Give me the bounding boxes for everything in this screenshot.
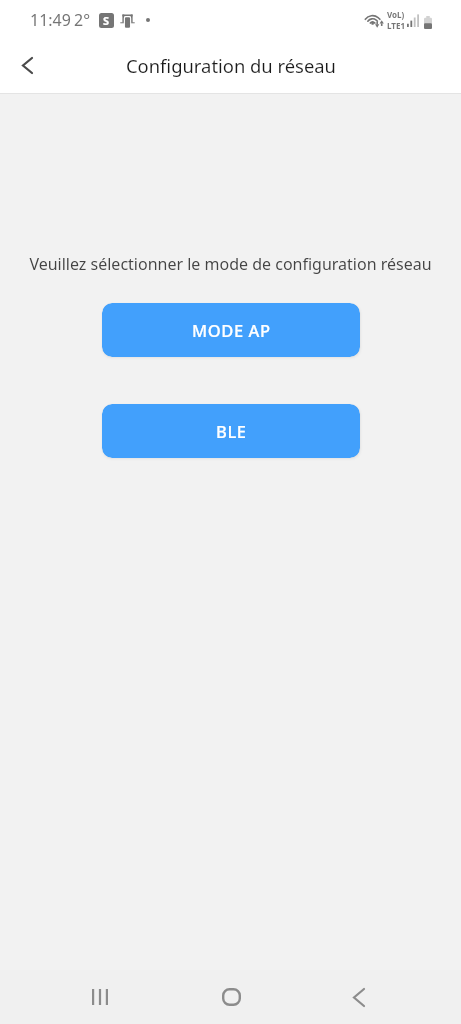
button[interactable]: Home [207, 973, 255, 1021]
button[interactable]: MODE AP [102, 303, 360, 357]
staticText: MODE AP [192, 319, 271, 341]
button[interactable]: BLE [102, 404, 360, 458]
staticText: BLE [216, 420, 247, 442]
staticText: Veuillez sélectionner le mode de configu… [29, 253, 432, 275]
staticText: 11:49 [30, 9, 71, 31]
staticText: 2° [74, 9, 91, 31]
staticText: VoL) [387, 9, 405, 20]
button[interactable]: Back [335, 973, 383, 1021]
staticText: S [103, 13, 110, 28]
staticText: LTE1 [387, 20, 405, 31]
staticText: Configuration du réseau [126, 53, 336, 78]
button[interactable]: Recent apps [76, 973, 124, 1021]
button[interactable]: Back [3, 41, 51, 89]
